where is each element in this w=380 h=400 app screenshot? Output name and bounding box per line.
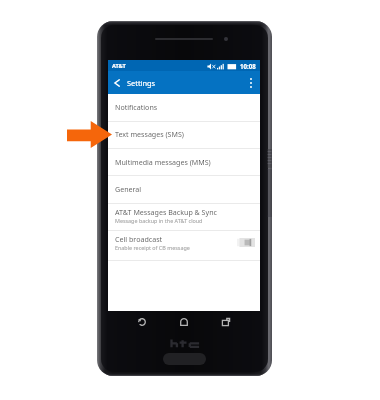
staticText: AT&T bbox=[112, 62, 126, 70]
staticText: Settings bbox=[127, 78, 156, 88]
button[interactable]: Back bbox=[135, 315, 149, 329]
staticText: Text messages (SMS) bbox=[115, 129, 184, 139]
button[interactable]: Cell broadcast toggle bbox=[237, 238, 255, 247]
button[interactable]: Multimedia messages (MMS) bbox=[108, 149, 260, 175]
staticText: Multimedia messages (MMS) bbox=[115, 157, 211, 167]
button[interactable]: Cell broadcast bbox=[108, 231, 260, 260]
staticText: Notifications bbox=[115, 102, 158, 112]
staticText: AT&T Messages Backup & Sync bbox=[115, 207, 217, 217]
button[interactable]: Recent apps bbox=[219, 315, 233, 329]
staticText: 10:08 bbox=[240, 62, 256, 70]
button[interactable]: Text messages (SMS) bbox=[108, 122, 260, 148]
button[interactable]: Home button bbox=[163, 353, 206, 365]
button[interactable]: Notifications bbox=[108, 94, 260, 121]
staticText: Message backup in the AT&T cloud bbox=[115, 217, 203, 224]
button[interactable]: Navigate up bbox=[108, 71, 126, 94]
button[interactable]: Home bbox=[177, 315, 191, 329]
staticText: Cell broadcast bbox=[115, 234, 163, 244]
staticText: General bbox=[115, 184, 142, 194]
button[interactable]: General bbox=[108, 176, 260, 203]
button[interactable]: More options bbox=[241, 71, 260, 94]
staticText: Enable receipt of CB message bbox=[115, 244, 190, 251]
other: Pointer arrow bbox=[67, 121, 112, 148]
button[interactable]: AT&T Messages Backup & Sync bbox=[108, 204, 260, 230]
